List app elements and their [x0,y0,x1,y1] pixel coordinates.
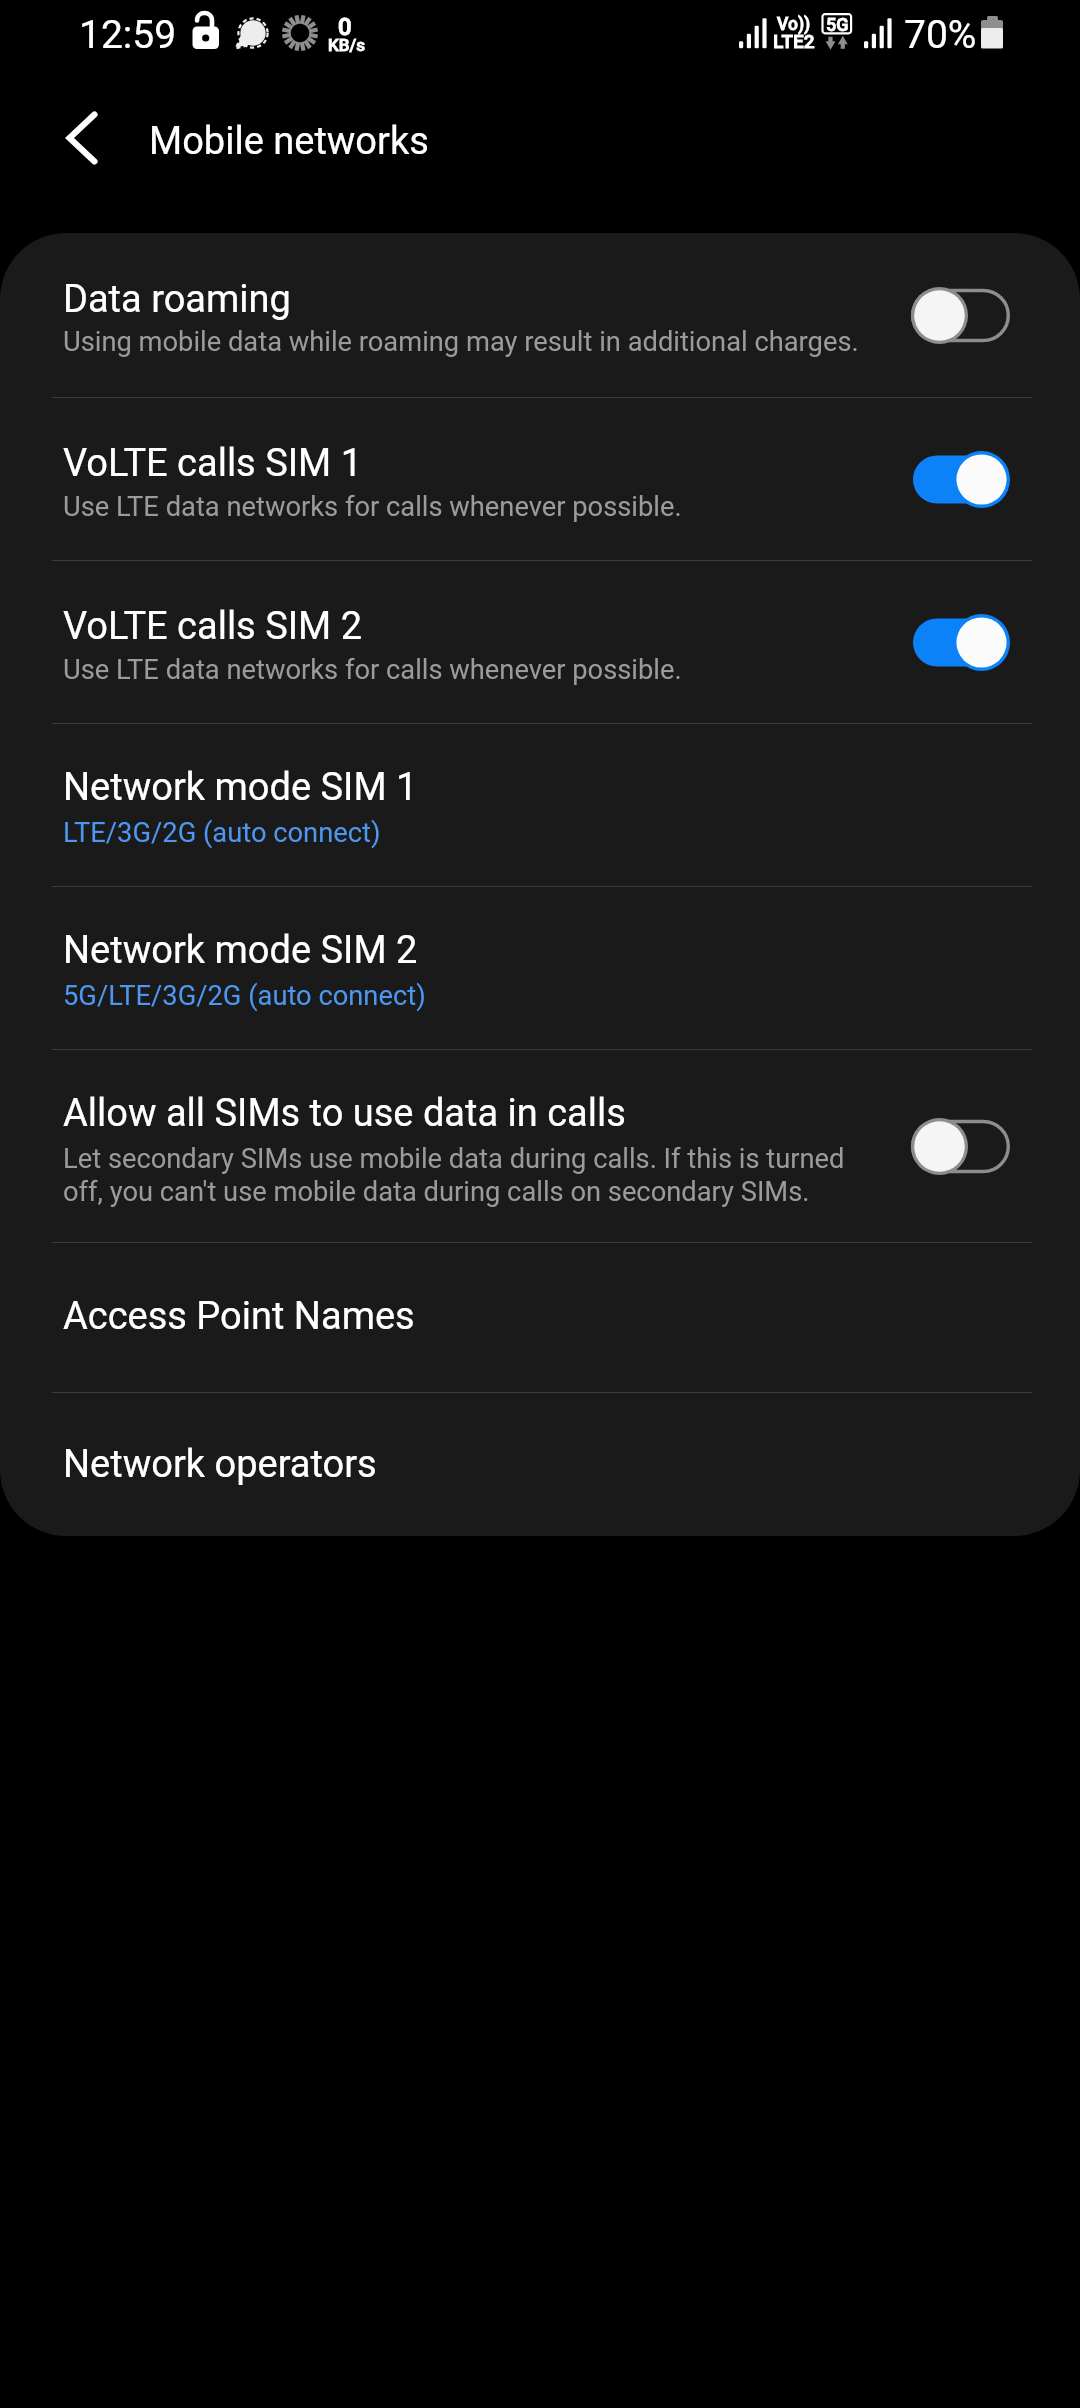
button[interactable]: Data roaming switch [911,287,1010,344]
button[interactable]: Network mode SIM 1 [0,724,1080,886]
staticText: Data roaming [63,277,291,322]
staticText: Use LTE data networks for calls whenever… [63,654,682,686]
staticText: 5G [826,14,849,35]
button[interactable]: Navigate up [34,90,130,186]
button[interactable]: Data roaming [0,233,1080,397]
staticText: LTE2 [773,30,815,52]
button[interactable]: VoLTE calls SIM 1 [0,398,1080,560]
button[interactable]: Allow all SIMs to use data in calls [0,1050,1080,1242]
staticText: off, you can't use mobile data during ca… [63,1176,810,1208]
staticText: Network operators [63,1442,377,1487]
staticText: Allow all SIMs to use data in calls [63,1091,626,1136]
staticText: 70% [904,12,977,58]
button[interactable]: VoLTE calls SIM 2 [0,561,1080,723]
staticText: Use LTE data networks for calls whenever… [63,491,682,523]
staticText: 12:59 [79,12,177,58]
staticText: 5G/LTE/3G/2G (auto connect) [63,980,426,1012]
staticText: Network mode SIM 2 [63,928,418,973]
staticText: Let secondary SIMs use mobile data durin… [63,1143,845,1175]
button[interactable]: VoLTE calls SIM 2 switch [911,614,1010,671]
staticText: LTE/3G/2G (auto connect) [63,817,381,849]
button[interactable]: Network operators [0,1393,1080,1536]
button[interactable]: Access Point Names [0,1243,1080,1392]
button[interactable]: Allow all SIMs switch [911,1118,1010,1175]
button[interactable]: Network mode SIM 2 [0,887,1080,1049]
button[interactable]: VoLTE calls SIM 1 switch [911,451,1010,508]
staticText: 0 [338,13,352,41]
staticText: Mobile networks [149,119,429,164]
staticText: Network mode SIM 1 [63,765,418,810]
staticText: VoLTE calls SIM 2 [63,604,363,649]
staticText: VoLTE calls SIM 1 [63,441,363,486]
staticText: KB/s [328,35,365,55]
staticText: Vo)) [777,14,811,35]
staticText: Using mobile data while roaming may resu… [63,326,859,358]
staticText: Access Point Names [63,1294,415,1339]
